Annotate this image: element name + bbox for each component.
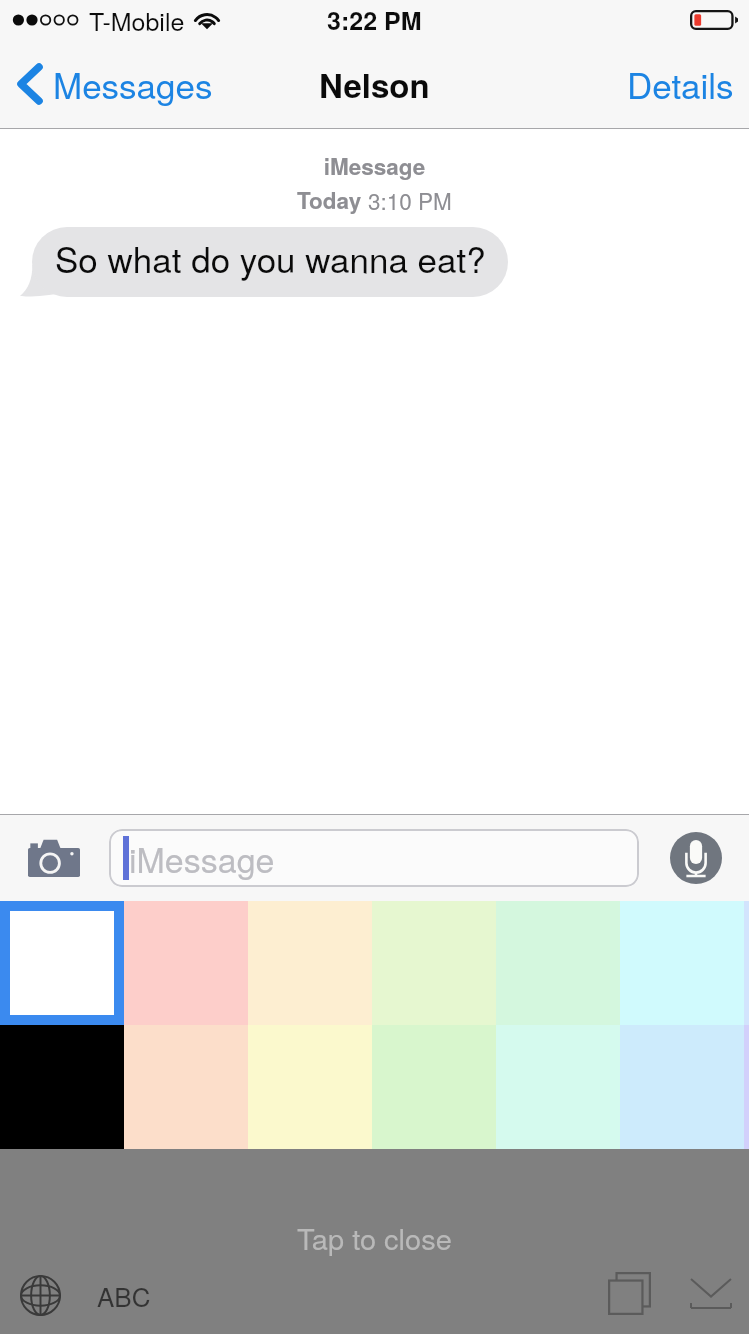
button[interactable]: Switch keyboard [12,1267,69,1324]
button[interactable]: iMessage [109,829,639,887]
button[interactable]: Dictate [670,832,722,884]
staticText: iMessage [129,834,275,883]
button[interactable]: Stickers [600,1264,659,1323]
staticText: 3:10 PM [368,184,452,216]
button[interactable]: Tap to close [0,1149,749,1334]
staticText: 3:22 PM [327,2,422,38]
staticText: Details [627,59,734,109]
button[interactable]: Messages [0,49,225,119]
staticText: Messages [53,59,213,109]
button[interactable]: ABC [91,1267,157,1324]
button[interactable]: Hide keyboard [682,1268,740,1319]
staticText: Tap to close [297,1217,452,1259]
button[interactable]: Details [613,49,749,119]
staticText: So what do you wanna eat? [55,233,486,283]
staticText: Nelson [319,61,430,108]
staticText: iMessage [0,150,749,182]
button[interactable]: Camera [0,828,109,888]
staticText: T-Mobile [89,2,185,38]
button[interactable]: White colour, selected [0,901,124,1025]
button[interactable]: So what do you wanna eat? [32,227,508,297]
staticText: ABC [97,1277,151,1314]
staticText: Today [297,184,362,216]
